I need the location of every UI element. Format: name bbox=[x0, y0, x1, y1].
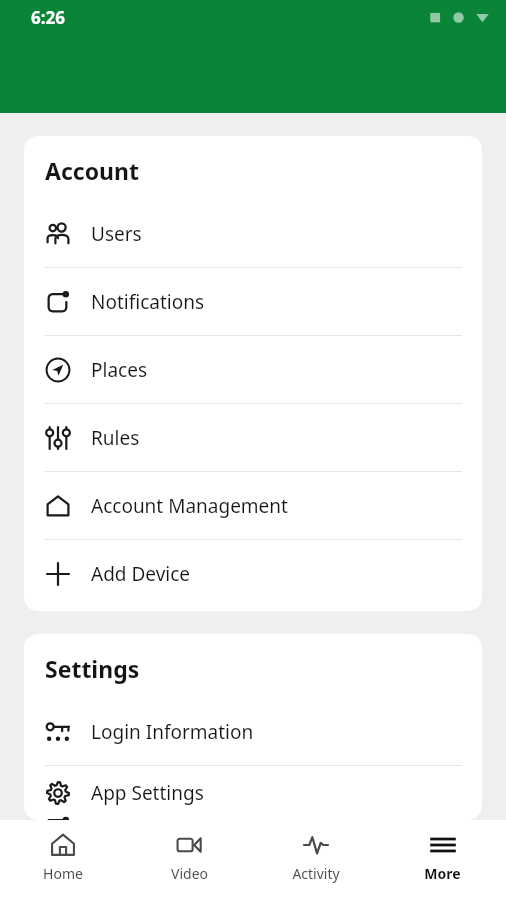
button[interactable]: Video bbox=[126, 820, 252, 900]
staticText: Rules bbox=[91, 425, 140, 451]
button[interactable]: Rules bbox=[24, 404, 482, 471]
button[interactable]: App Settings bbox=[24, 766, 482, 820]
other: More bbox=[430, 832, 456, 858]
staticText: 6:26 bbox=[31, 6, 65, 29]
button[interactable]: Notifications bbox=[24, 268, 482, 335]
staticText: Home bbox=[43, 864, 83, 883]
staticText: Activity bbox=[292, 864, 340, 883]
button[interactable]: Users bbox=[24, 200, 482, 267]
button[interactable]: More bbox=[379, 820, 506, 900]
staticText: Settings bbox=[45, 653, 140, 684]
other: Video bbox=[176, 832, 202, 858]
staticText: Places bbox=[91, 357, 147, 383]
staticText: Account bbox=[45, 155, 139, 186]
button[interactable]: Places bbox=[24, 336, 482, 403]
button[interactable]: Account Management bbox=[24, 472, 482, 539]
button[interactable]: Activity bbox=[252, 820, 379, 900]
staticText: Login Information bbox=[91, 719, 254, 745]
staticText: More bbox=[424, 864, 461, 883]
other: Activity bbox=[303, 832, 329, 858]
staticText: App Settings bbox=[91, 780, 204, 806]
staticText: Users bbox=[91, 221, 142, 247]
other: Home bbox=[50, 832, 76, 858]
button[interactable]: Login Information bbox=[24, 698, 482, 765]
staticText: Video bbox=[171, 864, 208, 883]
staticText: Account Management bbox=[91, 493, 288, 519]
staticText: Notifications bbox=[91, 289, 205, 315]
button[interactable]: Add Device bbox=[24, 540, 482, 607]
button[interactable]: Home bbox=[0, 820, 126, 900]
staticText: Add Device bbox=[91, 561, 191, 587]
